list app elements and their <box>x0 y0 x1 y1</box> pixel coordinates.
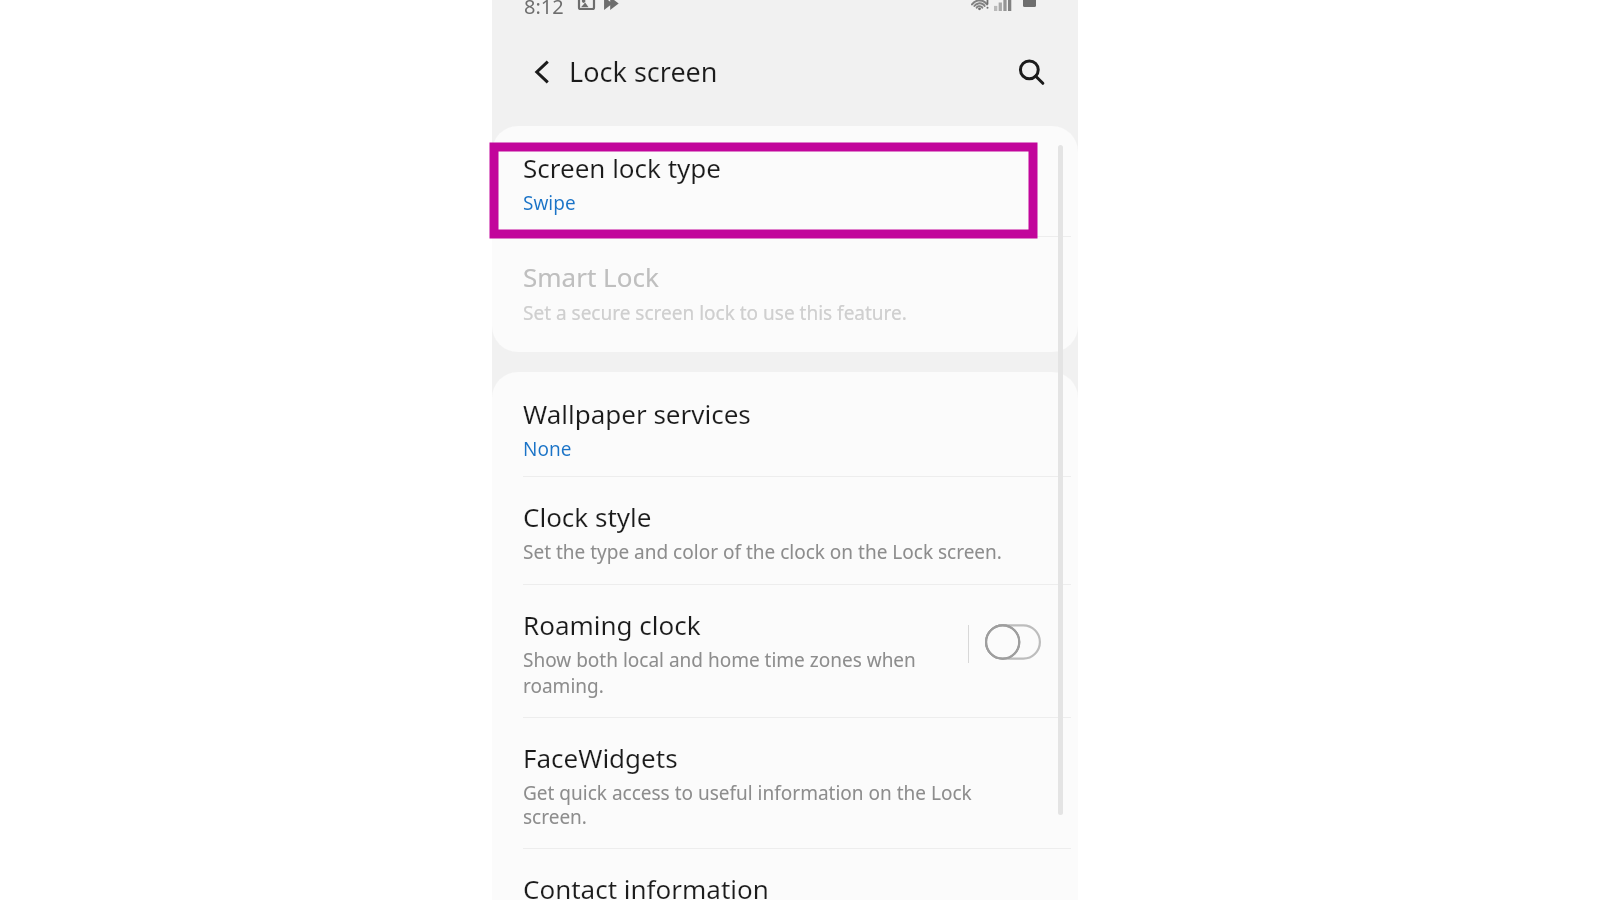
staticText: Show both local and home time zones when… <box>523 647 916 698</box>
button[interactable]: Wallpaper services <box>492 372 1078 476</box>
staticText: Wallpaper services <box>523 396 751 431</box>
button[interactable]: Roaming clock toggle, off <box>985 623 1041 661</box>
staticText: Set a secure screen lock to use this fea… <box>523 300 907 326</box>
button[interactable]: Roaming clock <box>492 585 1078 717</box>
staticText: FaceWidgets <box>523 740 678 775</box>
staticText: Set the type and color of the clock on t… <box>523 539 1002 565</box>
staticText: Roaming clock <box>523 607 701 642</box>
button[interactable]: Contact information <box>492 849 1078 900</box>
staticText: Smart Lock <box>523 259 659 294</box>
button[interactable]: Smart Lock <box>492 237 1078 351</box>
staticText: Lock screen <box>569 53 718 90</box>
staticText: 8:12 <box>524 0 564 19</box>
staticText: None <box>523 436 572 462</box>
staticText: Screen lock type <box>523 150 721 185</box>
staticText: Get quick access to useful information o… <box>523 780 972 829</box>
staticText: Contact information <box>523 871 769 900</box>
button[interactable]: Navigate up <box>514 44 570 100</box>
staticText: Clock style <box>523 499 652 534</box>
button[interactable]: FaceWidgets <box>492 718 1078 848</box>
button[interactable]: Screen lock type <box>492 126 1078 236</box>
button[interactable]: Search <box>1003 44 1059 100</box>
button[interactable]: Clock style <box>492 477 1078 584</box>
staticText: Swipe <box>523 190 576 216</box>
